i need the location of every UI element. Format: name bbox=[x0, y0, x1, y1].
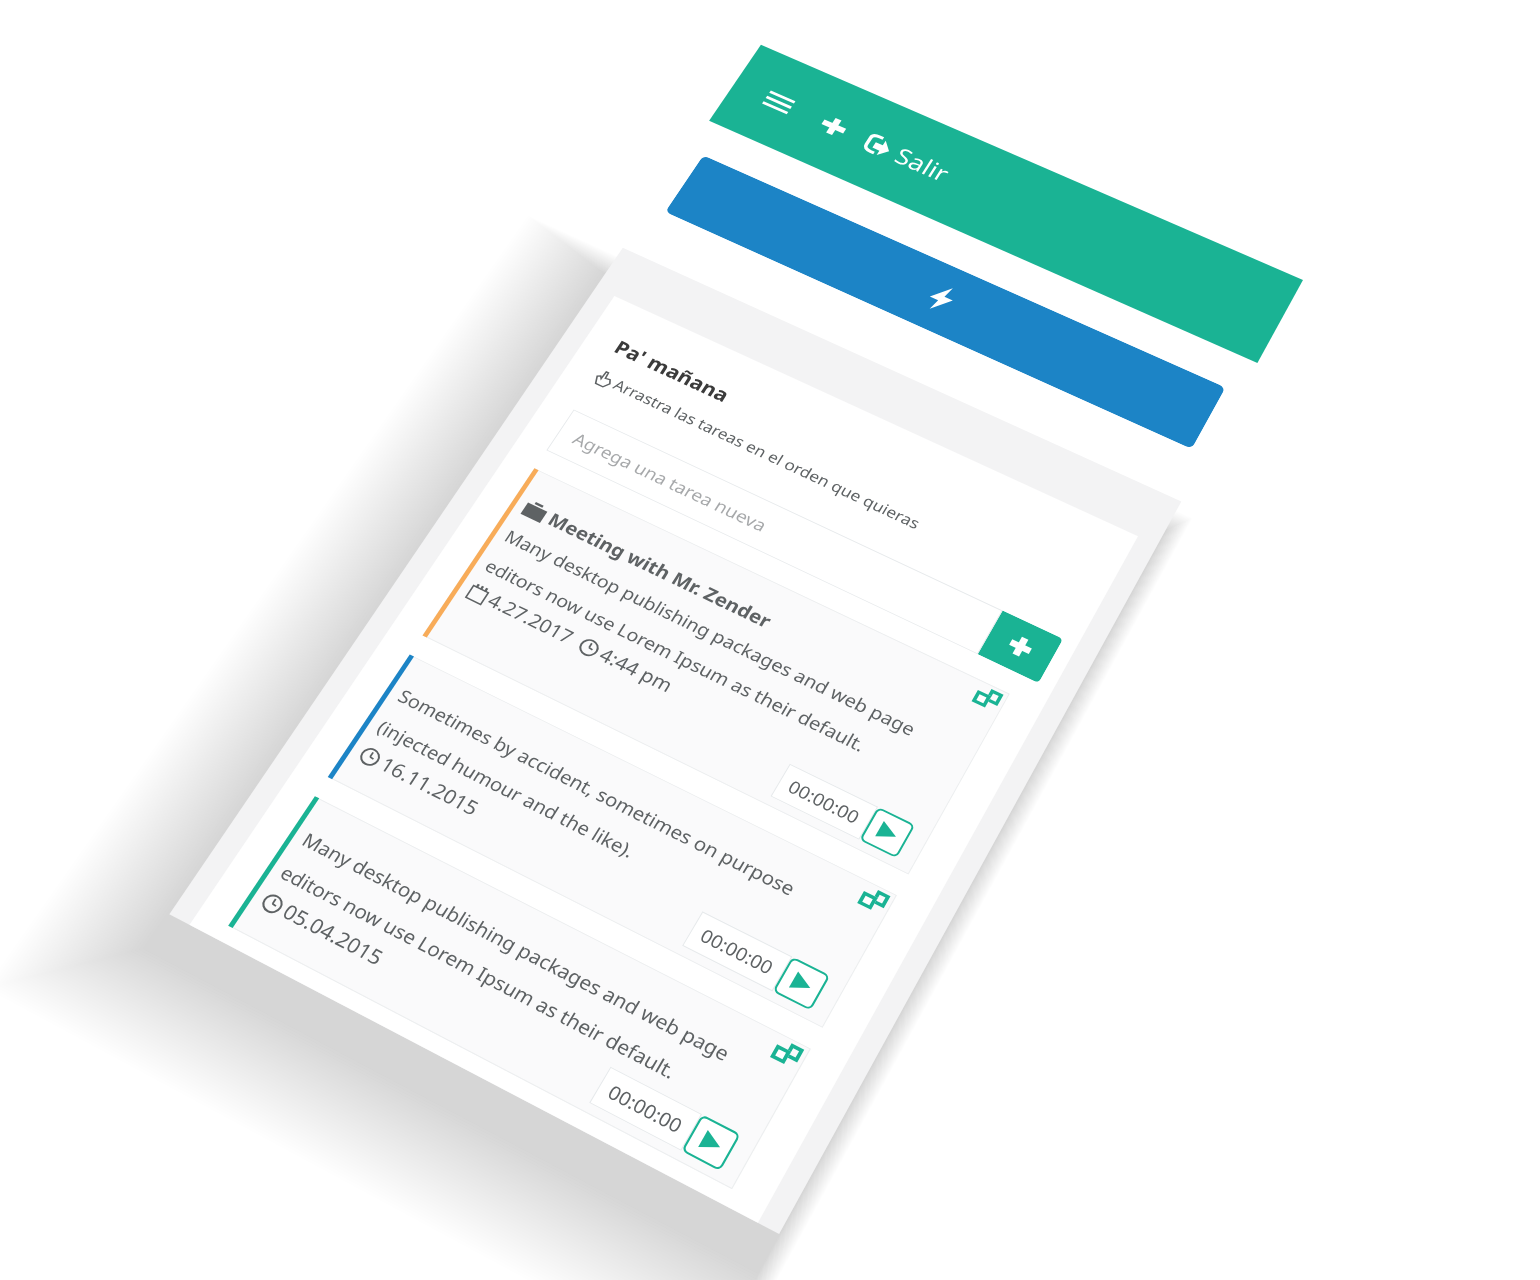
staticText: Salir bbox=[889, 140, 956, 189]
staticText: Sometimes by accident, sometimes on purp… bbox=[372, 684, 829, 949]
staticText: Many desktop publishing packages and web… bbox=[480, 525, 927, 776]
staticText: Meeting with Mr. Zender bbox=[543, 507, 776, 634]
staticText: 00:00:00 bbox=[784, 775, 864, 829]
staticText: Many desktop publishing packages and web… bbox=[275, 827, 742, 1106]
staticText: Agrega una tarea nueva bbox=[568, 428, 772, 537]
staticText: 00:00:00 bbox=[603, 1079, 688, 1139]
button[interactable]: Duplicate task bbox=[971, 684, 1003, 712]
button[interactable]: Salir bbox=[850, 119, 965, 197]
button[interactable]: Duplicate task bbox=[857, 885, 890, 914]
button[interactable]: Add task bbox=[806, 103, 861, 149]
staticText: 00:00:00 bbox=[696, 923, 778, 980]
staticText: 05.04.2015 bbox=[277, 898, 389, 972]
staticText: 4:44 pm bbox=[594, 642, 678, 698]
button[interactable] bbox=[228, 796, 811, 1189]
staticText: Arrastra las tareas en el orden que quie… bbox=[609, 375, 924, 534]
button[interactable]: Start timer bbox=[859, 807, 915, 858]
staticText: Pa' mañana bbox=[610, 334, 735, 407]
button[interactable]: Start timer bbox=[772, 957, 830, 1011]
staticText: 4.27.2017 bbox=[482, 588, 579, 650]
button[interactable]: Quick timer bbox=[665, 155, 1226, 449]
button[interactable]: Menu bbox=[751, 79, 806, 124]
button[interactable]: Agrega una tarea nueva bbox=[546, 409, 1003, 654]
button[interactable] bbox=[422, 468, 1010, 875]
button[interactable]: Add task bbox=[978, 610, 1063, 683]
button[interactable]: Start timer bbox=[681, 1114, 741, 1171]
button[interactable]: Duplicate task bbox=[770, 1038, 804, 1069]
button[interactable] bbox=[328, 654, 897, 1028]
staticText: 16.11.2015 bbox=[375, 751, 484, 822]
